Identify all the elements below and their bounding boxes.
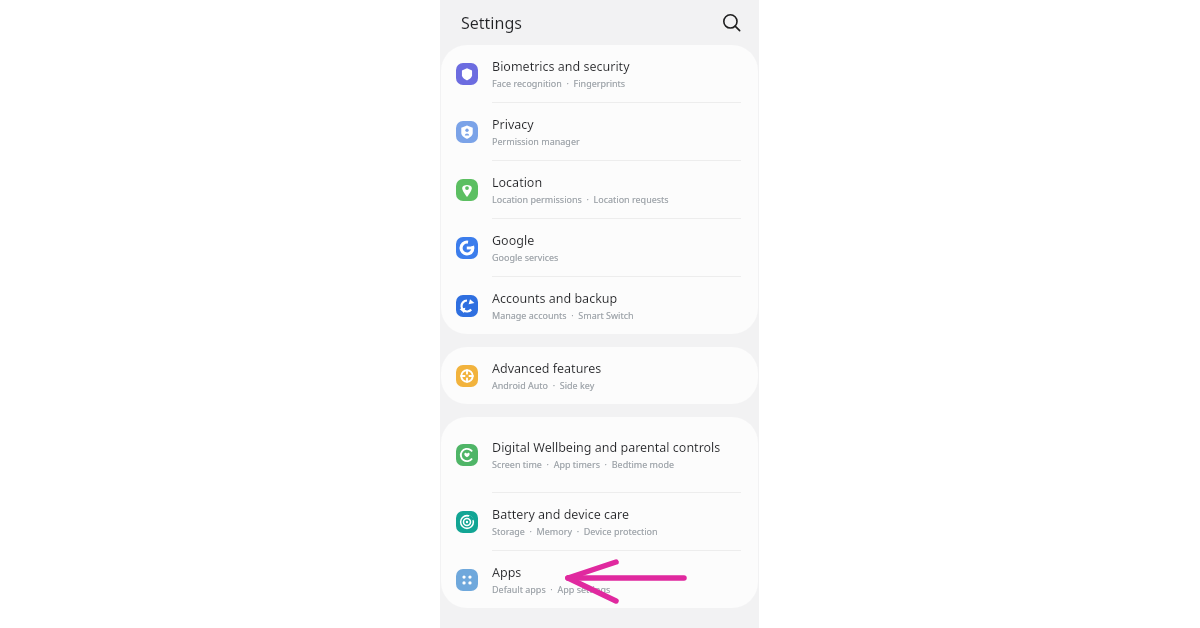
button[interactable]: Accounts and backup	[441, 277, 758, 334]
button[interactable]: Advanced features	[441, 347, 758, 404]
button[interactable]: Google	[441, 219, 758, 277]
staticText: Google	[492, 232, 535, 249]
staticText: Advanced features	[492, 360, 602, 377]
staticText: Google services	[492, 251, 559, 263]
staticText: Location permissions · Location requests	[492, 193, 669, 205]
staticText: Battery and device care	[492, 506, 630, 523]
staticText: Privacy	[492, 116, 534, 133]
staticText: Android Auto · Side key	[492, 379, 595, 391]
staticText: Digital Wellbeing and parental controls	[492, 439, 721, 456]
button[interactable]: Location	[441, 161, 758, 219]
button[interactable]: Digital Wellbeing and parental controls	[441, 417, 758, 493]
staticText: Default apps · App settings	[492, 583, 611, 595]
staticText: Biometrics and security	[492, 58, 630, 75]
button[interactable]: Biometrics and security	[441, 45, 758, 103]
staticText: Permission manager	[492, 135, 580, 147]
button[interactable]: Battery and device care	[441, 493, 758, 551]
staticText: Face recognition · Fingerprints	[492, 77, 626, 89]
staticText: Settings	[461, 12, 522, 34]
staticText: Location	[492, 174, 543, 191]
staticText: Apps	[492, 564, 522, 581]
staticText: Storage · Memory · Device protection	[492, 525, 658, 537]
button[interactable]: Privacy	[441, 103, 758, 161]
button[interactable]: Search	[716, 7, 748, 39]
button[interactable]: Apps	[441, 551, 758, 608]
staticText: Screen time · App timers · Bedtime mode	[492, 458, 675, 470]
staticText: Accounts and backup	[492, 290, 618, 307]
staticText: Manage accounts · Smart Switch	[492, 309, 634, 321]
